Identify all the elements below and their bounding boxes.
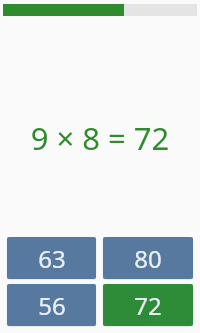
button[interactable]: 56	[7, 284, 96, 326]
other: Quiz progress	[3, 4, 197, 16]
button[interactable]: 63	[7, 237, 96, 279]
button[interactable]: 80	[103, 237, 193, 279]
staticText: 56	[38, 289, 66, 322]
button[interactable]: 72	[103, 284, 193, 326]
staticText: 9 × 8 = 72	[0, 117, 200, 153]
staticText: 80	[134, 242, 162, 275]
staticText: 72	[134, 289, 162, 322]
staticText: 63	[38, 242, 66, 275]
